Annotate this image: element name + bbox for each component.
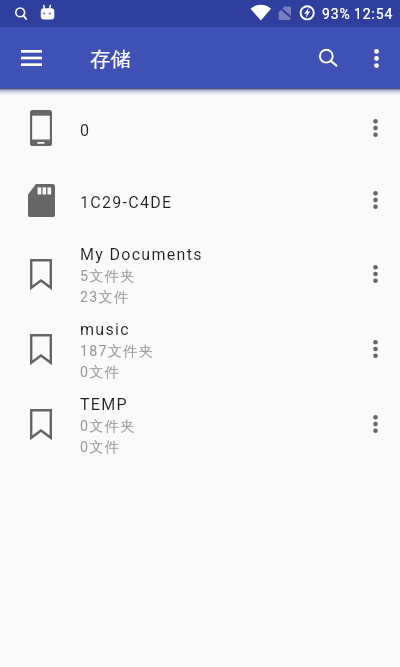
- button[interactable]: More options: [351, 104, 399, 152]
- button[interactable]: My Documents: [0, 236, 400, 311]
- staticText: music: [80, 320, 130, 339]
- staticText: 存储: [90, 47, 131, 72]
- button[interactable]: More options: [351, 325, 399, 373]
- staticText: 0文件: [80, 438, 121, 456]
- button[interactable]: 0: [0, 92, 400, 164]
- staticText: 0文件: [80, 363, 121, 381]
- staticText: 0: [80, 121, 91, 140]
- button[interactable]: More options: [351, 400, 399, 448]
- staticText: My Documents: [80, 245, 203, 264]
- staticText: 1C29-C4DE: [80, 193, 173, 212]
- button[interactable]: More options: [352, 34, 400, 82]
- staticText: 187文件夹: [80, 342, 155, 360]
- staticText: 93%: [322, 6, 351, 22]
- staticText: TEMP: [80, 395, 128, 414]
- staticText: 23文件: [80, 288, 130, 306]
- button[interactable]: Search: [304, 34, 352, 82]
- button[interactable]: More options: [351, 176, 399, 224]
- staticText: 0文件夹: [80, 417, 136, 435]
- button[interactable]: More options: [351, 250, 399, 298]
- staticText: 5文件夹: [80, 267, 136, 285]
- button[interactable]: Open navigation drawer: [5, 31, 58, 84]
- button[interactable]: music: [0, 311, 400, 386]
- staticText: 12:54: [354, 6, 394, 22]
- button[interactable]: 1C29-C4DE: [0, 164, 400, 236]
- button[interactable]: TEMP: [0, 386, 400, 461]
